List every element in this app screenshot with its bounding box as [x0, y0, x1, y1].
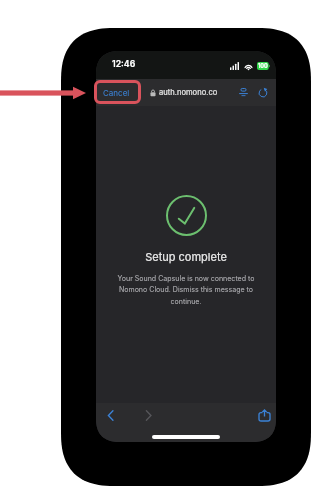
button[interactable]: Forward — [139, 406, 157, 424]
staticText: auth.nomono.co — [159, 88, 218, 97]
button[interactable]: Reload — [255, 85, 270, 100]
button[interactable]: Reader view — [236, 85, 251, 100]
staticText: 12:46 — [112, 59, 136, 70]
staticText: Setup complete — [145, 250, 227, 263]
staticText: 100 — [258, 63, 268, 70]
staticText: Cancel — [103, 88, 130, 98]
button[interactable]: Cancel — [97, 83, 136, 103]
staticText: Your Sound Capsule is now connected to N… — [110, 274, 262, 306]
button[interactable]: Back — [101, 406, 119, 424]
button[interactable]: Share — [255, 406, 273, 424]
